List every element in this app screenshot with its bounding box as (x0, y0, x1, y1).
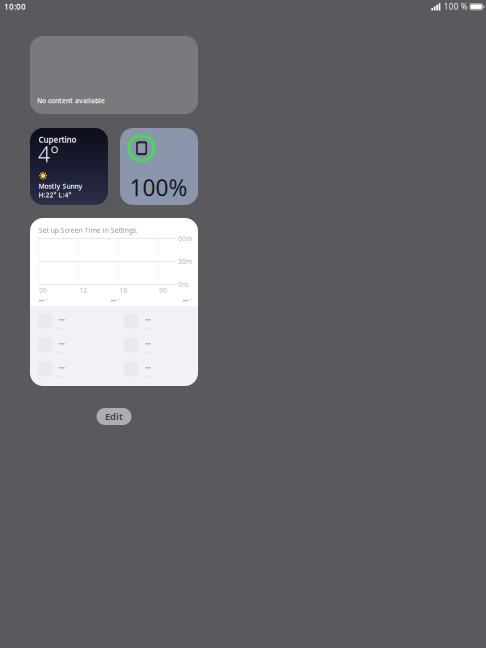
staticText: 4° (38, 140, 59, 168)
staticText: -- (59, 360, 65, 373)
staticText: -- (183, 295, 189, 305)
staticText: 100 % (444, 1, 468, 12)
staticText: -- (39, 295, 45, 305)
staticText: Set up Screen Time in Settings. (39, 226, 138, 235)
staticText: -- (145, 360, 151, 373)
staticText: -- (145, 323, 149, 332)
button[interactable]: Set up Screen Time in Settings. (30, 218, 198, 386)
staticText: -- (59, 347, 63, 356)
staticText: -- (145, 371, 149, 380)
staticText: 10:00 (4, 1, 26, 12)
staticText: 100% (129, 172, 187, 202)
button[interactable]: No content available (30, 36, 198, 114)
button[interactable]: Edit (96, 408, 131, 425)
staticText: -- (145, 336, 151, 349)
staticText: -- (111, 295, 117, 305)
staticText: H:22° L:4° (39, 190, 72, 199)
staticText: Cupertino (39, 134, 77, 145)
button[interactable]: Cupertino (30, 128, 108, 205)
staticText: Edit (105, 410, 123, 423)
staticText: -- (145, 347, 149, 356)
staticText: 06 (39, 286, 47, 295)
staticText: -- (59, 336, 65, 349)
staticText: 12 (79, 286, 87, 295)
staticText: No content available (37, 96, 105, 105)
staticText: Mostly Sunny (39, 182, 83, 191)
staticText: -- (59, 312, 65, 325)
staticText: 18 (119, 286, 127, 295)
staticText: 00 (159, 286, 167, 295)
staticText: -- (59, 323, 63, 332)
staticText: -- (145, 312, 151, 325)
staticText: -- (59, 371, 63, 380)
staticText: 60m (178, 234, 192, 243)
staticText: 30m (178, 257, 192, 266)
button[interactable]: 100% (120, 128, 198, 205)
staticText: 0m (178, 280, 188, 289)
